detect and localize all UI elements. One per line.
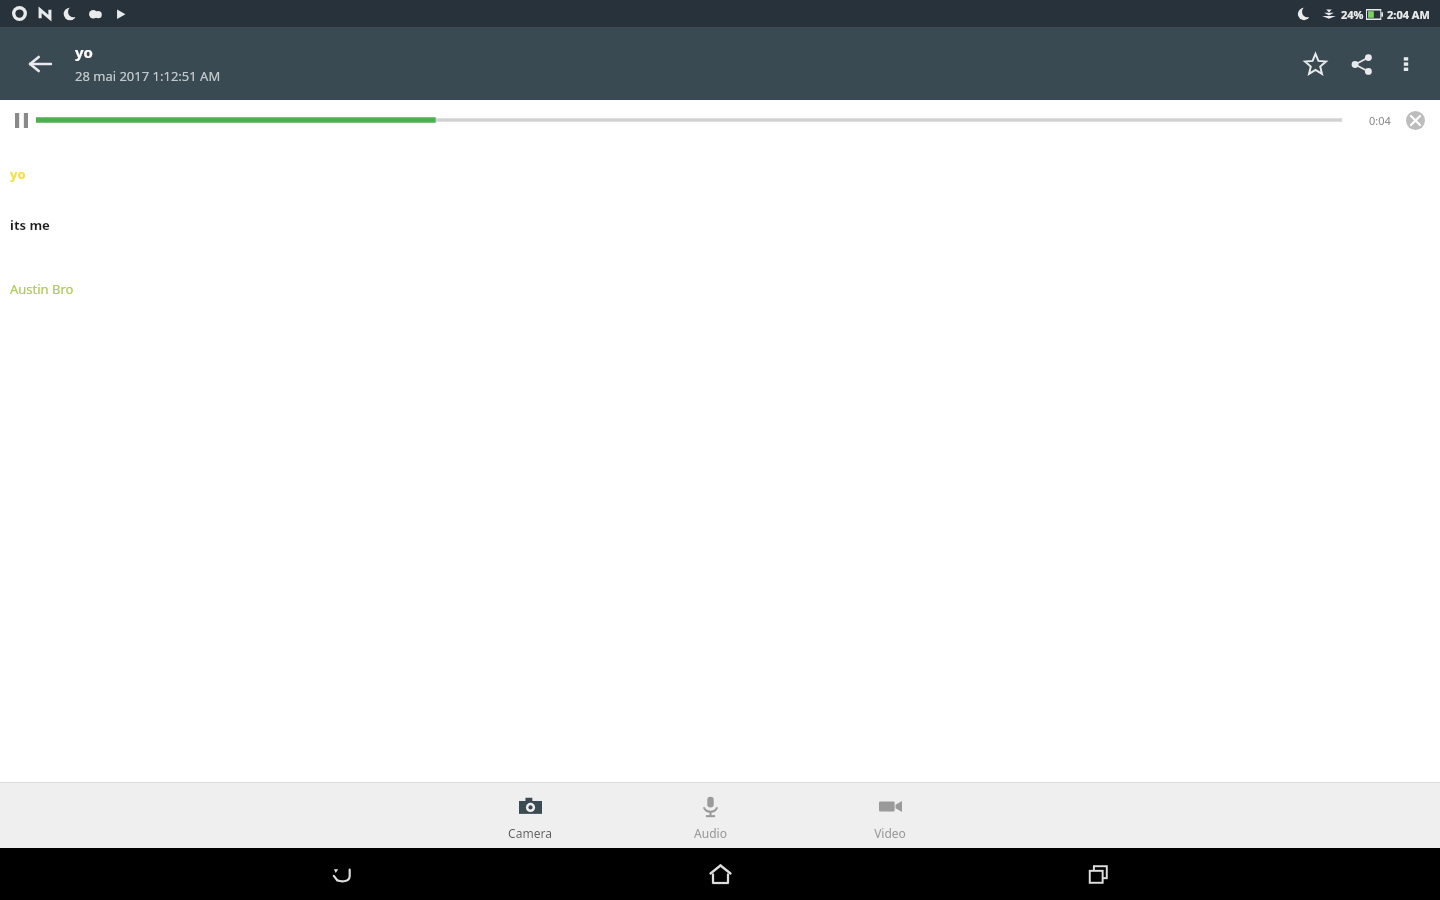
- button[interactable]: Recent apps: [1062, 848, 1134, 900]
- button[interactable]: Audio: [620, 783, 800, 841]
- staticText: 0:04: [1369, 113, 1391, 128]
- staticText: its me: [10, 216, 50, 234]
- button[interactable]: Favorite: [1292, 41, 1338, 87]
- button[interactable]: Home: [684, 848, 756, 900]
- button[interactable]: Back: [306, 848, 378, 900]
- staticText: yo: [75, 42, 93, 62]
- button[interactable]: Video: [800, 783, 980, 841]
- button[interactable]: More options: [1384, 42, 1428, 86]
- staticText: 24%: [1341, 7, 1364, 22]
- staticText: Camera: [508, 825, 552, 841]
- staticText: Video: [874, 825, 906, 841]
- staticText: Audio: [694, 825, 727, 841]
- button[interactable]: Camera: [440, 783, 620, 841]
- staticText: yo: [10, 165, 26, 183]
- button[interactable]: Back: [18, 42, 62, 86]
- staticText: Austin Bro: [10, 280, 74, 298]
- button[interactable]: Share: [1338, 41, 1384, 87]
- button[interactable]: Close player: [1402, 107, 1428, 133]
- button[interactable]: Pause: [8, 107, 34, 133]
- staticText: 2:04 AM: [1387, 7, 1430, 22]
- staticText: 28 mai 2017 1:12:51 AM: [75, 67, 221, 85]
